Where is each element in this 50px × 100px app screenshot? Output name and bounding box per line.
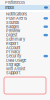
staticText: Summary bbox=[6, 37, 25, 42]
button[interactable]: Storage bbox=[0, 62, 50, 67]
button[interactable]: Security bbox=[0, 54, 50, 58]
staticText: Account bbox=[6, 45, 20, 50]
button[interactable]: Badges bbox=[0, 25, 50, 29]
staticText: Inbox bbox=[5, 5, 14, 10]
staticText: Privacy bbox=[6, 49, 20, 54]
button[interactable]: Account bbox=[0, 46, 50, 50]
button[interactable]: Digest bbox=[0, 33, 50, 37]
staticText: Report bbox=[6, 41, 18, 46]
button[interactable]: Data Usage bbox=[0, 58, 50, 62]
staticText: Sounds bbox=[6, 20, 19, 25]
button[interactable]: Push Alerts bbox=[0, 16, 50, 20]
button[interactable]: Summary bbox=[0, 37, 50, 41]
staticText: Digest bbox=[6, 33, 17, 37]
staticText: Notifications bbox=[6, 12, 27, 16]
button[interactable] bbox=[0, 77, 50, 94]
staticText: Storage bbox=[6, 62, 20, 67]
staticText: Security bbox=[6, 54, 21, 58]
button[interactable]: Wifi Assist bbox=[0, 67, 50, 71]
staticText: Push Alerts bbox=[6, 16, 27, 21]
button[interactable]: Support bbox=[0, 71, 50, 75]
staticText: Preview bbox=[6, 28, 20, 33]
button[interactable]: Preview bbox=[0, 29, 50, 33]
staticText: Badges bbox=[6, 24, 19, 29]
button[interactable]: Notifications bbox=[0, 12, 50, 16]
button[interactable]: Sounds bbox=[0, 20, 50, 25]
button[interactable]: Privacy bbox=[0, 50, 50, 54]
staticText: Data Usage bbox=[6, 58, 26, 63]
staticText: Preferences bbox=[5, 0, 25, 5]
staticText: Support bbox=[6, 70, 20, 75]
staticText: Wifi Assist bbox=[6, 66, 25, 71]
button[interactable]: Report bbox=[0, 41, 50, 46]
